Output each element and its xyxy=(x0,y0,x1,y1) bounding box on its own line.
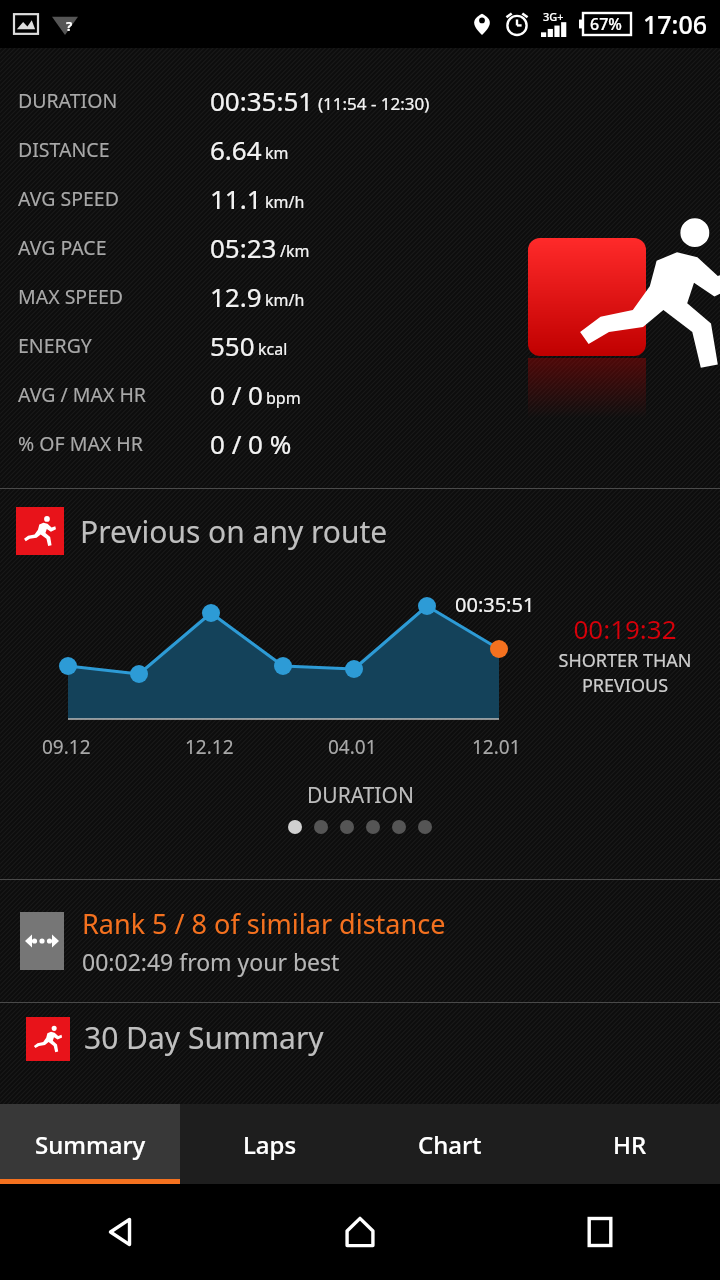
staticText: km/h xyxy=(265,289,305,311)
staticText: AVG PACE xyxy=(18,234,107,261)
staticText: 04.01 xyxy=(328,734,377,760)
staticText: 17:06 xyxy=(643,7,708,41)
staticText: ENERGY xyxy=(18,332,92,359)
button[interactable]: Back xyxy=(0,1184,240,1280)
staticText: kcal xyxy=(258,338,288,360)
staticText: AVG / MAX HR xyxy=(18,381,146,408)
button[interactable]: Previous on any route xyxy=(16,507,388,555)
staticText: SHORTER THAN PREVIOUS xyxy=(545,648,705,698)
staticText: DURATION xyxy=(307,781,414,810)
staticText: (11:54 - 12:30) xyxy=(318,92,430,115)
staticText: HR xyxy=(613,1128,647,1161)
staticText: DURATION xyxy=(18,87,118,114)
staticText: 550 xyxy=(210,328,255,363)
staticText: Rank 5 / 8 of similar distance xyxy=(82,905,446,942)
button[interactable]: Recent apps xyxy=(480,1184,720,1280)
button[interactable]: Laps xyxy=(180,1104,360,1184)
staticText: 0 / 0 xyxy=(210,377,263,412)
staticText: Summary xyxy=(35,1128,146,1161)
staticText: Previous on any route xyxy=(80,511,388,552)
button[interactable]: Summary xyxy=(0,1104,180,1184)
button[interactable]: HR xyxy=(540,1104,720,1184)
staticText: 67% xyxy=(590,13,622,35)
staticText: Laps xyxy=(243,1128,297,1161)
staticText: 6.64 xyxy=(210,132,262,167)
staticText: 12.01 xyxy=(472,734,521,760)
staticText: /km xyxy=(280,240,310,262)
staticText: MAX SPEED xyxy=(18,283,124,310)
staticText: 11.1 xyxy=(210,181,262,216)
button[interactable]: Chart xyxy=(360,1104,540,1184)
staticText: Chart xyxy=(418,1128,482,1161)
staticText: AVG SPEED xyxy=(18,185,119,212)
staticText: km/h xyxy=(265,191,305,213)
button[interactable]: Home xyxy=(240,1184,480,1280)
staticText: ? xyxy=(66,17,73,35)
staticText: 05:23 xyxy=(210,230,277,265)
staticText: km xyxy=(265,142,289,164)
staticText: 0 / 0 % xyxy=(210,426,292,461)
staticText: 00:19:32 xyxy=(573,611,677,646)
staticText: 09.12 xyxy=(42,734,91,760)
staticText: 00:35:51 xyxy=(210,83,314,118)
staticText: bpm xyxy=(266,387,301,409)
staticText: DISTANCE xyxy=(18,136,110,163)
button[interactable]: 30 Day Summary xyxy=(0,1003,720,1073)
staticText: 30 Day Summary xyxy=(84,1017,324,1058)
staticText: 3G+ xyxy=(543,9,564,24)
staticText: 12.9 xyxy=(210,279,262,314)
staticText: % OF MAX HR xyxy=(18,430,143,457)
staticText: 12.12 xyxy=(185,734,234,760)
staticText: 00:35:51 xyxy=(455,591,535,618)
staticText: 00:02:49 from your best xyxy=(82,946,340,977)
button[interactable]: Rank 5 / 8 of similar distance xyxy=(0,880,720,1002)
